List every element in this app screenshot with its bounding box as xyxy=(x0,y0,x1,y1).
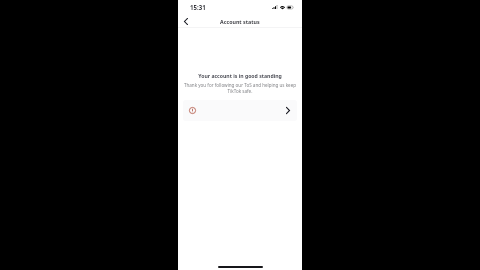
staticText: Account status xyxy=(220,18,260,25)
button[interactable]: Back xyxy=(180,15,192,27)
staticText: Thank you for following our ToS and help… xyxy=(182,82,298,94)
staticText: Your account is in good standing xyxy=(178,72,302,79)
button[interactable]: Account status details xyxy=(183,100,297,121)
staticText: 15:31 xyxy=(190,3,206,11)
